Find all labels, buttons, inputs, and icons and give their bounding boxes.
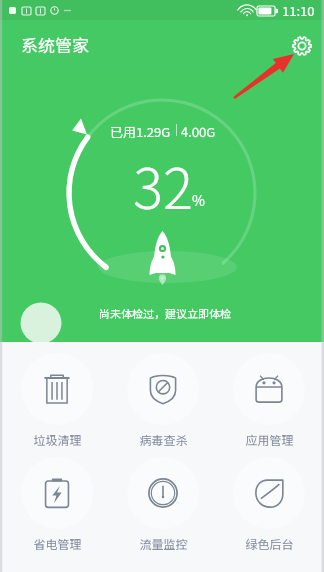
button[interactable]: 绿色后台 [216, 457, 322, 552]
staticText: 病毒查杀 [139, 431, 188, 448]
staticText: 已用1.29G [110, 122, 171, 141]
staticText: 32 [133, 144, 193, 225]
button[interactable]: 病毒查杀 [110, 353, 216, 448]
button[interactable]: 垃圾清理 [4, 353, 110, 448]
button[interactable]: 省电管理 [4, 457, 110, 552]
staticText: 应用管理 [245, 431, 294, 448]
staticText: 绿色后台 [245, 535, 294, 552]
staticText: % [192, 190, 205, 210]
button[interactable]: 应用管理 [216, 353, 322, 448]
staticText: 流量监控 [139, 535, 188, 552]
button[interactable]: 流量监控 [110, 457, 216, 552]
staticText: 4.00G [181, 122, 216, 141]
staticText: 11:10 [282, 1, 315, 20]
staticText: 垃圾清理 [33, 431, 82, 448]
staticText: 尚未体检过，建议立即体检 [99, 305, 231, 321]
staticText: 省电管理 [33, 535, 82, 552]
button[interactable]: Settings [283, 27, 320, 64]
staticText: 系统管家 [21, 32, 89, 57]
